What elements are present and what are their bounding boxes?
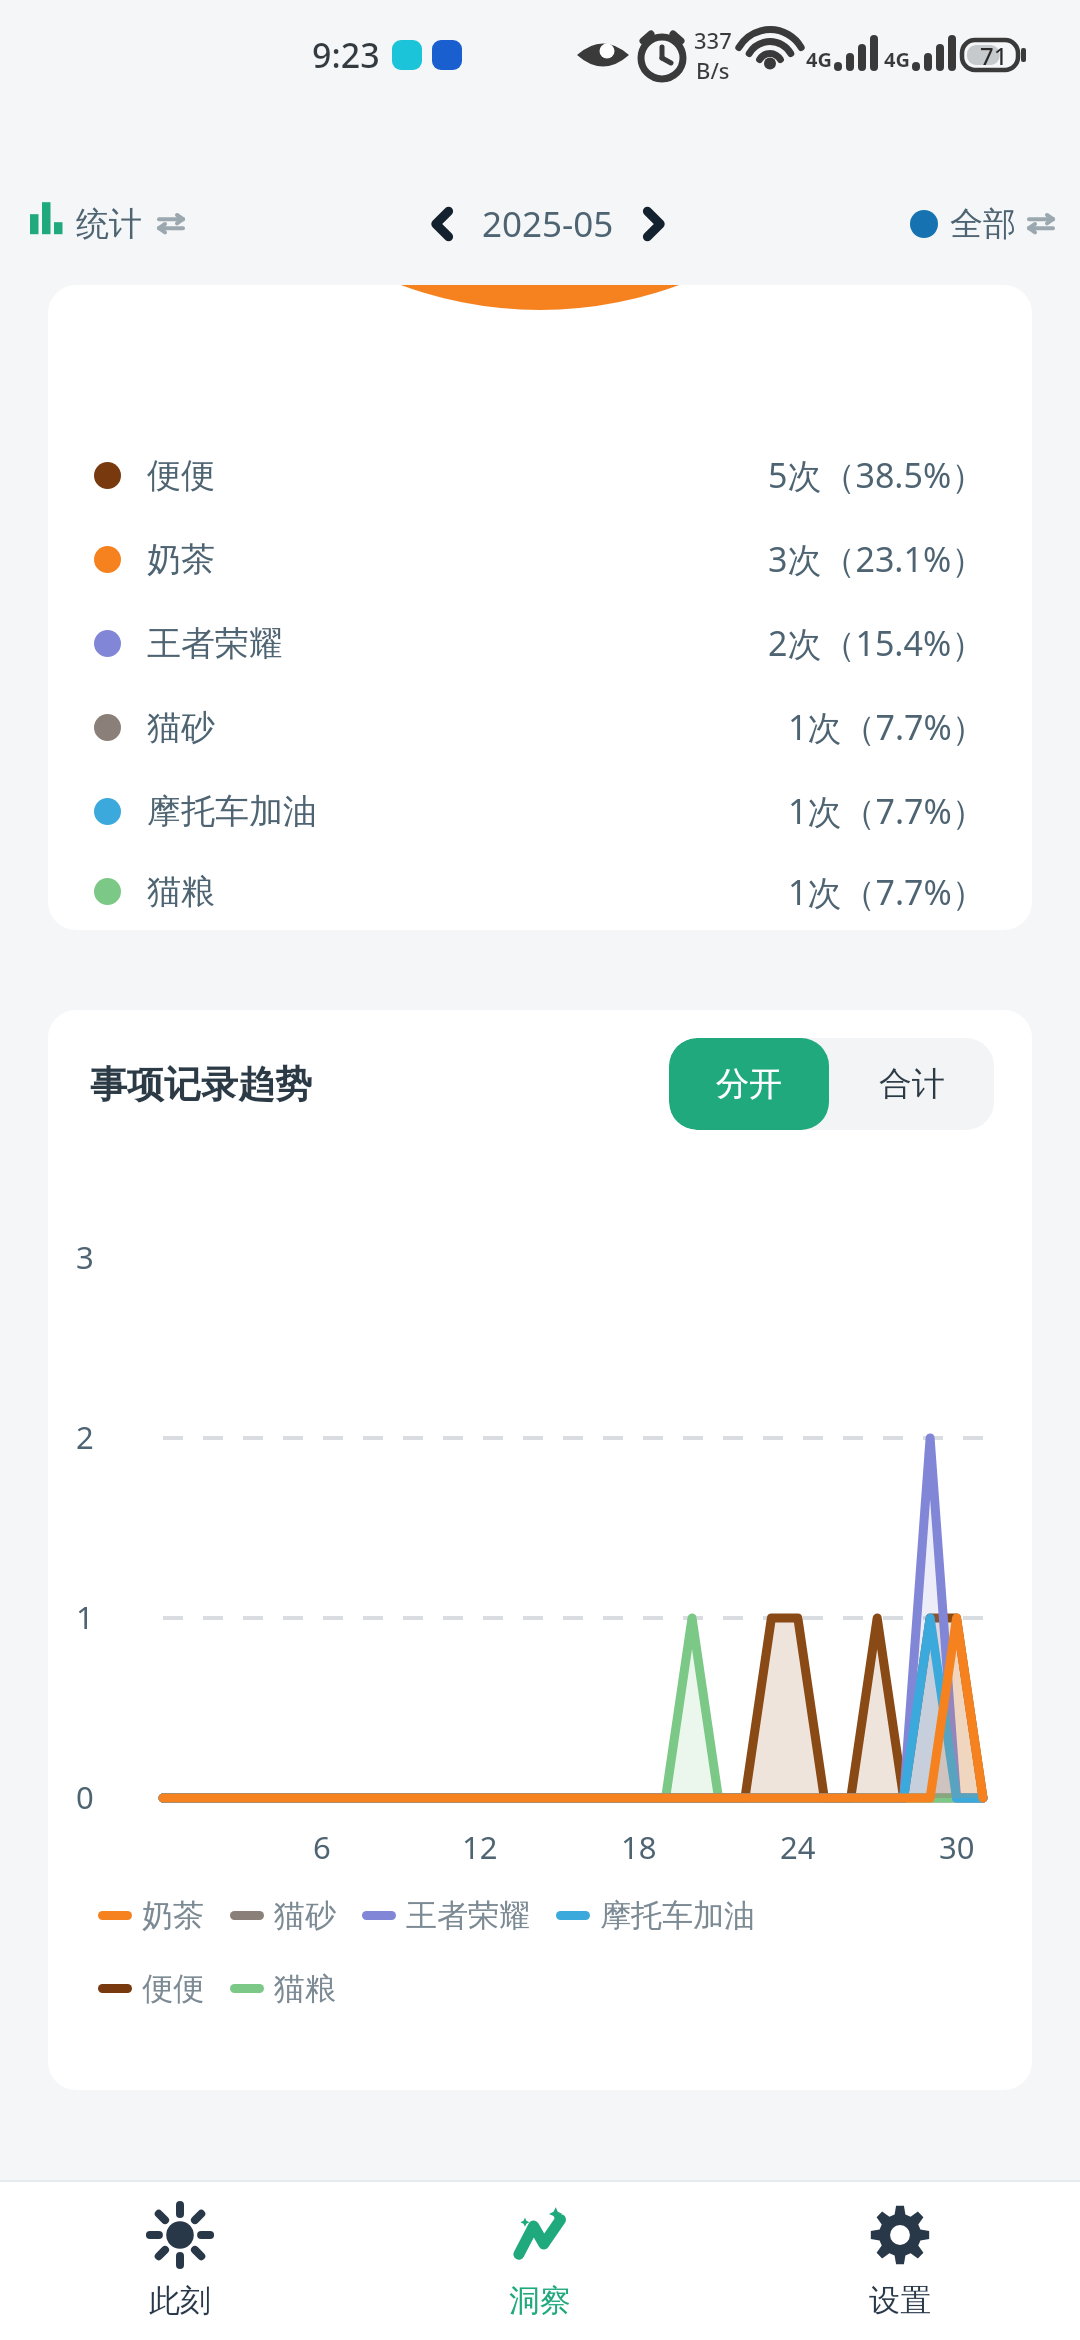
staticText: 3 (76, 1236, 94, 1278)
staticText: 猫砂 (274, 1896, 336, 1935)
staticText: 5次（38.5%） (768, 452, 986, 498)
button[interactable]: 合计 (829, 1038, 994, 1130)
staticText: 0 (76, 1776, 94, 1818)
button[interactable]: 奶茶 (48, 517, 1032, 601)
staticText: 1 (76, 1596, 94, 1638)
staticText: 奶茶 (147, 538, 215, 581)
button[interactable]: Insights (360, 2182, 720, 2340)
staticText: 全部 (950, 203, 1016, 245)
staticText: 4G (806, 46, 832, 73)
staticText: 王者荣耀 (147, 622, 283, 665)
staticText: 猫粮 (147, 870, 215, 913)
button[interactable]: 猫砂 (48, 685, 1032, 769)
staticText: 合计 (879, 1063, 945, 1105)
staticText: 便便 (147, 454, 215, 497)
button[interactable]: 分开 (669, 1038, 829, 1130)
staticText: B/s (696, 55, 730, 85)
button[interactable]: 便便 (48, 433, 1032, 517)
staticText: 猫粮 (274, 1969, 336, 2008)
staticText: 摩托车加油 (600, 1896, 755, 1935)
button[interactable]: Settings (720, 2182, 1080, 2340)
staticText: 分开 (716, 1063, 782, 1105)
staticText: 2 (76, 1416, 94, 1458)
staticText: 337 (694, 25, 732, 55)
staticText: 30 (939, 1826, 975, 1868)
button[interactable]: 摩托车加油 (48, 769, 1032, 853)
staticText: 3次（23.1%） (768, 536, 986, 582)
button[interactable]: Next month (620, 191, 686, 257)
button[interactable]: Previous month (410, 191, 476, 257)
button[interactable]: 全部 (894, 193, 1080, 255)
staticText: 24 (780, 1826, 816, 1868)
staticText: 2次（15.4%） (768, 620, 986, 666)
staticText: 便便 (142, 1969, 204, 2008)
staticText: 设置 (869, 2281, 931, 2320)
staticText: 4G (884, 46, 910, 73)
button[interactable]: 王者荣耀 (362, 1890, 530, 1941)
staticText: 9:23 (312, 32, 380, 78)
staticText: 12 (462, 1826, 498, 1868)
button[interactable]: Now (0, 2182, 360, 2340)
staticText: 18 (621, 1826, 657, 1868)
button[interactable]: 摩托车加油 (556, 1890, 755, 1941)
button[interactable]: 猫粮 (48, 853, 1032, 930)
button[interactable]: 统计 (0, 193, 202, 255)
button[interactable]: 王者荣耀 (48, 601, 1032, 685)
staticText: 洞察 (509, 2281, 571, 2320)
staticText: 猫砂 (147, 706, 215, 749)
staticText: 1次（7.7%） (788, 788, 986, 834)
staticText: 统计 (76, 203, 142, 245)
staticText: 事项记录趋势 (90, 1061, 312, 1108)
staticText: 6 (313, 1826, 331, 1868)
staticText: 71 (980, 39, 1008, 72)
button[interactable]: 奶茶 (98, 1890, 204, 1941)
staticText: 奶茶 (142, 1896, 204, 1935)
staticText: 摩托车加油 (147, 790, 317, 833)
staticText: 王者荣耀 (406, 1896, 530, 1935)
button[interactable]: 猫砂 (230, 1890, 336, 1941)
button[interactable]: 便便 (98, 1963, 204, 2014)
button[interactable]: 猫粮 (230, 1963, 336, 2014)
staticText: 1次（7.7%） (788, 704, 986, 750)
staticText: 此刻 (149, 2281, 211, 2320)
staticText: 2025-05 (482, 200, 614, 248)
staticText: 1次（7.7%） (788, 869, 986, 915)
